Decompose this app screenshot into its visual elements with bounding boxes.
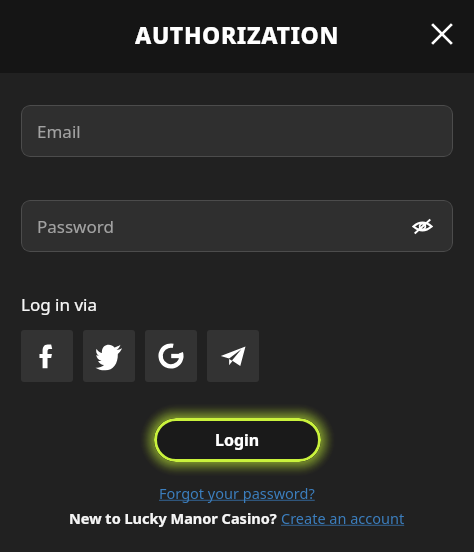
button[interactable]: Email [21,105,453,157]
staticText: Password [37,215,114,238]
button[interactable]: Close [422,14,462,54]
button[interactable]: Forgot your password? [155,482,319,504]
button[interactable]: Login [154,418,321,462]
staticText: Create an account [281,508,405,528]
button[interactable]: Password [21,200,453,252]
button[interactable]: Google [145,330,197,382]
staticText: Log in via [21,293,97,316]
staticText: AUTHORIZATION [135,19,340,50]
staticText: Login [215,429,260,451]
button[interactable]: Facebook [21,330,73,382]
staticText: New to Lucky Manor Casino? [69,508,281,528]
button[interactable]: Show password [407,211,437,241]
button[interactable]: Create an account [281,508,405,528]
staticText: Email [37,120,81,143]
button[interactable]: Telegram [207,330,259,382]
staticText: Forgot your password? [159,483,315,503]
button[interactable]: Twitter [83,330,135,382]
